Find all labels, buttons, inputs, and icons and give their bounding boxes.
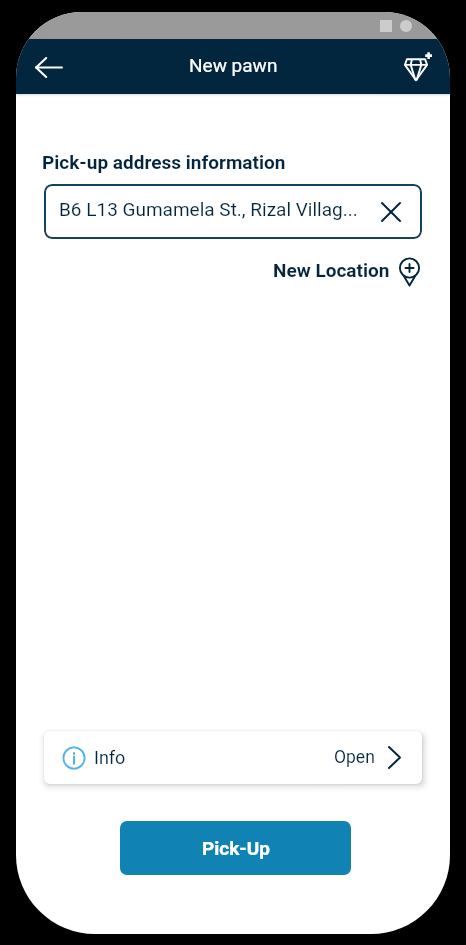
button[interactable]: Add new pawn bbox=[395, 43, 441, 89]
button[interactable]: Clear address bbox=[376, 197, 406, 227]
button[interactable]: Pick-Up bbox=[120, 821, 351, 875]
staticText: New Location bbox=[273, 259, 390, 281]
button[interactable]: B6 L13 Gumamela St., Rizal Villag... bbox=[44, 184, 422, 239]
button[interactable]: New Location bbox=[273, 256, 420, 284]
button[interactable]: Info bbox=[44, 731, 422, 784]
button[interactable]: Back bbox=[25, 43, 73, 91]
staticText: Open bbox=[334, 747, 375, 768]
staticText: Info bbox=[94, 747, 126, 768]
staticText: B6 L13 Gumamela St., Rizal Villag... bbox=[59, 198, 376, 220]
staticText: Pick-Up bbox=[202, 837, 270, 859]
staticText: New pawn bbox=[189, 54, 278, 76]
staticText: Pick-up address information bbox=[42, 151, 286, 173]
